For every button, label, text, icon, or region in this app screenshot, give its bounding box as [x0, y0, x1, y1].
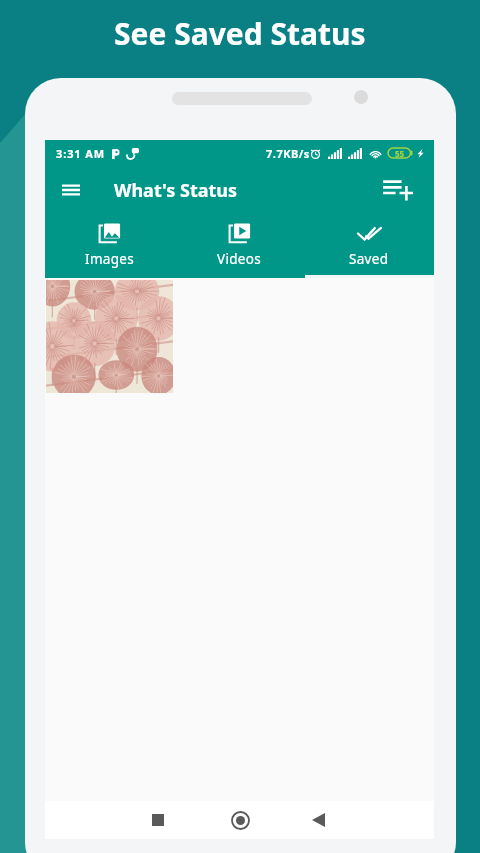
- staticText: 7.7KB/s: [266, 146, 310, 161]
- button[interactable]: Images: [45, 214, 174, 275]
- staticText: Images: [85, 250, 134, 268]
- button[interactable]: Menu: [53, 172, 89, 208]
- staticText: Videos: [217, 250, 261, 268]
- button[interactable]: Recents: [141, 803, 175, 837]
- staticText: What's Status: [114, 178, 238, 203]
- staticText: Saved: [349, 250, 389, 268]
- button[interactable]: Home: [223, 803, 257, 837]
- button[interactable]: Videos: [174, 214, 304, 275]
- staticText: 55: [395, 148, 405, 159]
- button[interactable]: Sort: [376, 170, 416, 210]
- button[interactable]: Saved: [304, 214, 434, 275]
- button[interactable]: [46, 280, 173, 393]
- button[interactable]: Back: [301, 803, 335, 837]
- staticText: See Saved Status: [114, 13, 366, 54]
- staticText: 3:31 AM: [56, 146, 106, 161]
